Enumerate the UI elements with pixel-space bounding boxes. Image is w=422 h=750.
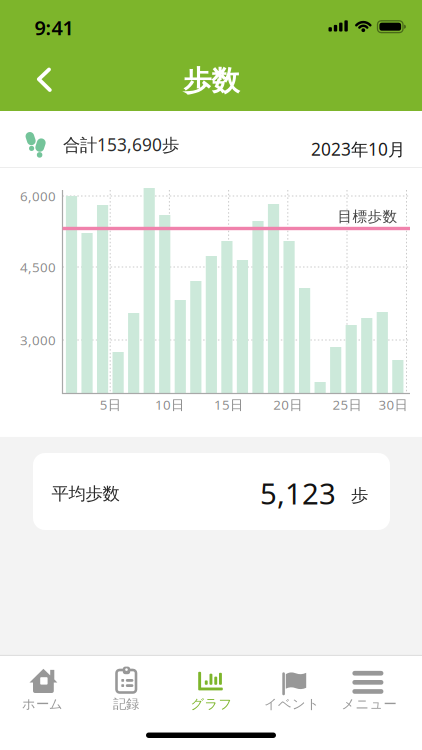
staticText: メニュー bbox=[341, 696, 396, 712]
staticText: 2023年10月 bbox=[311, 137, 405, 160]
staticText: 目標歩数 bbox=[337, 207, 397, 225]
staticText: 記録 bbox=[113, 696, 139, 712]
staticText: 歩 bbox=[351, 485, 368, 506]
staticText: 10日 bbox=[155, 396, 184, 413]
staticText: 9:41 bbox=[34, 14, 73, 41]
staticText: グラフ bbox=[190, 696, 232, 712]
button[interactable]: イベント bbox=[250, 658, 334, 718]
staticText: 平均歩数 bbox=[51, 483, 119, 504]
button[interactable]: メニュー bbox=[327, 658, 411, 718]
staticText: ホーム bbox=[22, 696, 63, 712]
staticText: 15日 bbox=[214, 396, 243, 413]
button[interactable]: ホーム bbox=[0, 658, 84, 718]
staticText: イベント bbox=[264, 696, 320, 712]
staticText: 5,123 bbox=[260, 473, 336, 512]
staticText: 25日 bbox=[332, 396, 361, 413]
staticText: 6,000 bbox=[20, 187, 56, 205]
staticText: 5日 bbox=[100, 396, 121, 413]
button[interactable] bbox=[22, 58, 66, 102]
button[interactable]: 記録 bbox=[84, 658, 168, 718]
staticText: 3,000 bbox=[20, 331, 56, 349]
staticText: 歩数 bbox=[183, 64, 239, 98]
staticText: 4,500 bbox=[20, 258, 56, 276]
staticText: 合計153,690歩 bbox=[63, 133, 179, 156]
staticText: 20日 bbox=[273, 396, 302, 413]
button[interactable]: グラフ bbox=[169, 658, 253, 718]
staticText: 30日 bbox=[378, 396, 407, 413]
